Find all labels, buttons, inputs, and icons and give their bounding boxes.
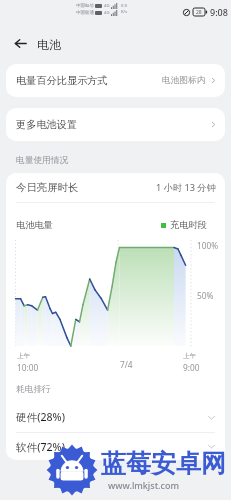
staticText: 耗电排行: [16, 384, 51, 395]
staticText: 100%: [197, 240, 219, 251]
staticText: www.lmkjst.com: [108, 479, 180, 491]
staticText: 7/4: [120, 359, 133, 370]
staticText: 今日亮屏时长: [16, 181, 79, 194]
button[interactable]: 硬件(28%): [6, 402, 225, 432]
staticText: 硬件(28%): [16, 410, 65, 424]
staticText: 上午: [17, 352, 31, 360]
staticText: 上午: [183, 352, 197, 360]
button[interactable]: 软件(72%): [6, 433, 225, 460]
staticText: 更多电池设置: [16, 118, 78, 131]
staticText: 4G: [104, 10, 110, 16]
staticText: 电池图标内: [162, 75, 206, 86]
staticText: 电池电量: [16, 219, 53, 231]
staticText: 9:00: [183, 362, 200, 373]
staticText: 28: [196, 9, 202, 16]
button[interactable]: 今日亮屏时长: [6, 173, 225, 202]
staticText: 中国电信: [76, 3, 94, 9]
button[interactable]: 电量百分比显示方式: [6, 64, 225, 97]
staticText: 软件(72%): [16, 440, 65, 454]
button[interactable]: 更多电池设置: [6, 108, 225, 141]
staticText: 电量百分比显示方式: [16, 74, 108, 87]
staticText: 50%: [197, 290, 214, 301]
staticText: 1 小时 13 分钟: [156, 181, 216, 194]
staticText: 中国联通: [76, 10, 94, 16]
staticText: 10:00: [17, 362, 39, 373]
staticText: 电量使用情况: [16, 155, 69, 166]
staticText: 电池: [37, 37, 61, 52]
staticText: 充电时段: [170, 219, 207, 231]
staticText: 0.9: [121, 3, 127, 9]
other: Silent mode: [183, 9, 190, 16]
staticText: 9:08: [210, 6, 228, 18]
staticText: K/s: [121, 9, 128, 15]
staticText: 蓝莓安卓网: [101, 448, 226, 479]
staticText: 4G: [104, 3, 110, 9]
button[interactable]: Back: [10, 33, 31, 54]
